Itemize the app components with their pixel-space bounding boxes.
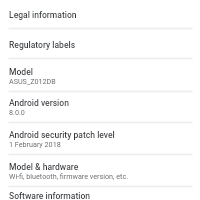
button[interactable]: Software information	[0, 187, 200, 200]
staticText: Regulatory labels	[9, 40, 76, 50]
staticText: Android version	[9, 98, 69, 108]
button[interactable]: Model	[0, 59, 200, 91]
button[interactable]: Android security patch level	[0, 123, 200, 154]
staticText: Model & hardware	[9, 162, 79, 172]
staticText: Wi-fi, bluetooth, firmware version, etc.	[9, 172, 129, 180]
staticText: Legal information	[9, 10, 77, 20]
staticText: ASUS_Z012DB	[9, 77, 56, 85]
staticText: Android security patch level	[9, 130, 115, 140]
staticText: 8.0.0	[9, 108, 25, 116]
staticText: Software information	[9, 191, 91, 200]
staticText: 1 February 2018	[9, 140, 61, 148]
button[interactable]: Model & hardware	[0, 155, 200, 186]
button[interactable]: Android version	[0, 92, 200, 122]
button[interactable]: Regulatory labels	[0, 29, 200, 58]
button[interactable]: Legal information	[0, 0, 200, 28]
staticText: Model	[9, 67, 33, 77]
